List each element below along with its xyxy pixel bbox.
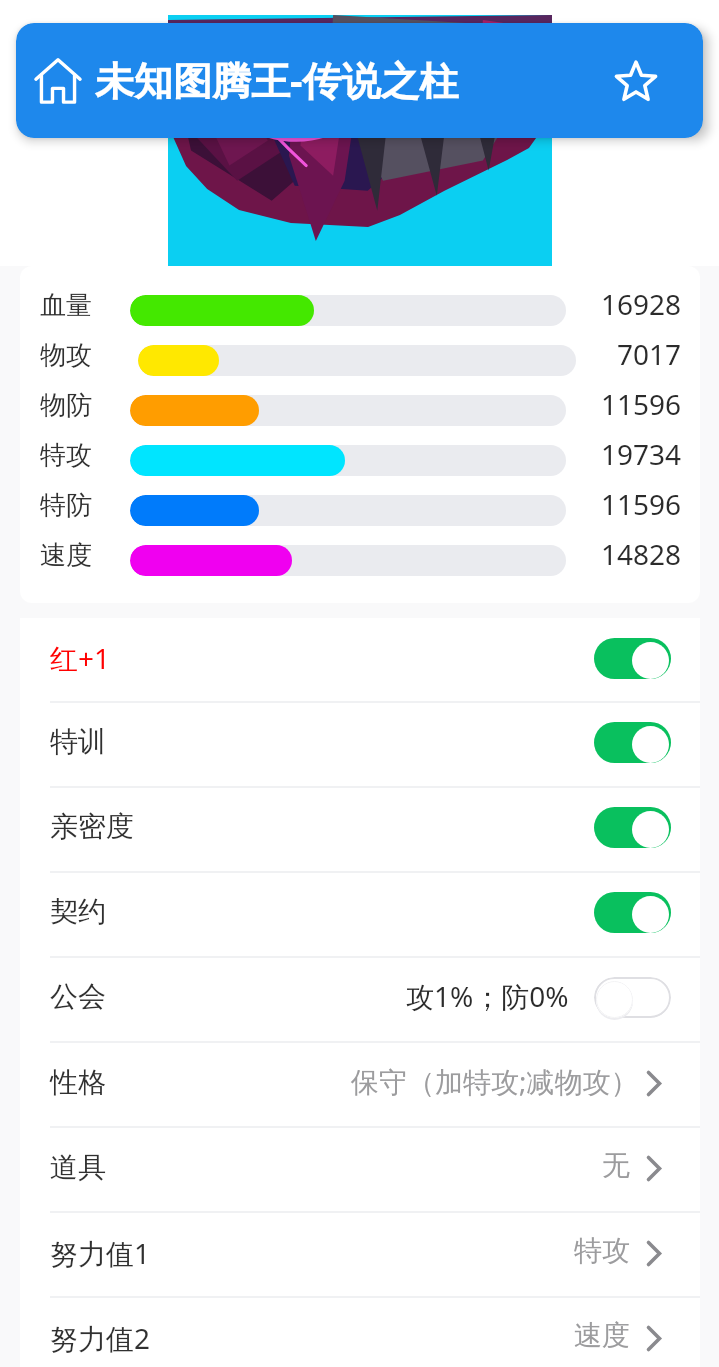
- button[interactable]: Toggle on: [594, 891, 672, 933]
- staticText: 物攻: [40, 339, 92, 372]
- staticText: 性格: [50, 1065, 106, 1100]
- button[interactable]: 亲密度: [20, 786, 700, 871]
- staticText: 物防: [40, 389, 92, 422]
- button[interactable]: 努力值2: [20, 1296, 700, 1367]
- staticText: 公会: [50, 979, 106, 1014]
- staticText: 血量: [40, 289, 92, 322]
- staticText: 7017: [560, 335, 681, 373]
- button[interactable]: 公会: [20, 956, 700, 1041]
- button[interactable]: Toggle off: [594, 976, 672, 1018]
- staticText: 特攻: [40, 439, 92, 472]
- staticText: 攻1%；防0%: [406, 977, 569, 1015]
- button[interactable]: 道具: [20, 1126, 700, 1211]
- button[interactable]: 红+1: [20, 618, 700, 701]
- button[interactable]: Toggle on: [594, 637, 672, 679]
- staticText: 红+1: [50, 639, 111, 677]
- staticText: 亲密度: [50, 809, 134, 844]
- button[interactable]: Favorite: [592, 23, 680, 138]
- staticText: 14828: [560, 535, 681, 573]
- staticText: 11596: [560, 385, 681, 423]
- button[interactable]: Toggle on: [594, 806, 672, 848]
- staticText: 16928: [560, 285, 681, 323]
- staticText: 11596: [560, 485, 681, 523]
- button[interactable]: 努力值1: [20, 1211, 700, 1296]
- staticText: 特防: [40, 489, 92, 522]
- button[interactable]: 契约: [20, 871, 700, 956]
- staticText: 道具: [50, 1150, 106, 1185]
- button[interactable]: 特训: [20, 701, 700, 786]
- staticText: 保守（加特攻;减物攻）: [351, 1062, 639, 1100]
- button[interactable]: 性格: [20, 1041, 700, 1126]
- button[interactable]: Home: [16, 23, 100, 138]
- staticText: 19734: [560, 435, 681, 473]
- staticText: 特攻: [574, 1233, 630, 1268]
- staticText: 努力值1: [50, 1234, 151, 1272]
- staticText: 速度: [574, 1318, 630, 1353]
- staticText: 无: [602, 1148, 630, 1183]
- staticText: 契约: [50, 894, 106, 929]
- staticText: 特训: [50, 724, 106, 759]
- staticText: 努力值2: [50, 1319, 151, 1357]
- staticText: 未知图腾王-传说之柱: [95, 53, 459, 106]
- staticText: 速度: [40, 539, 92, 572]
- button[interactable]: Toggle on: [594, 721, 672, 763]
